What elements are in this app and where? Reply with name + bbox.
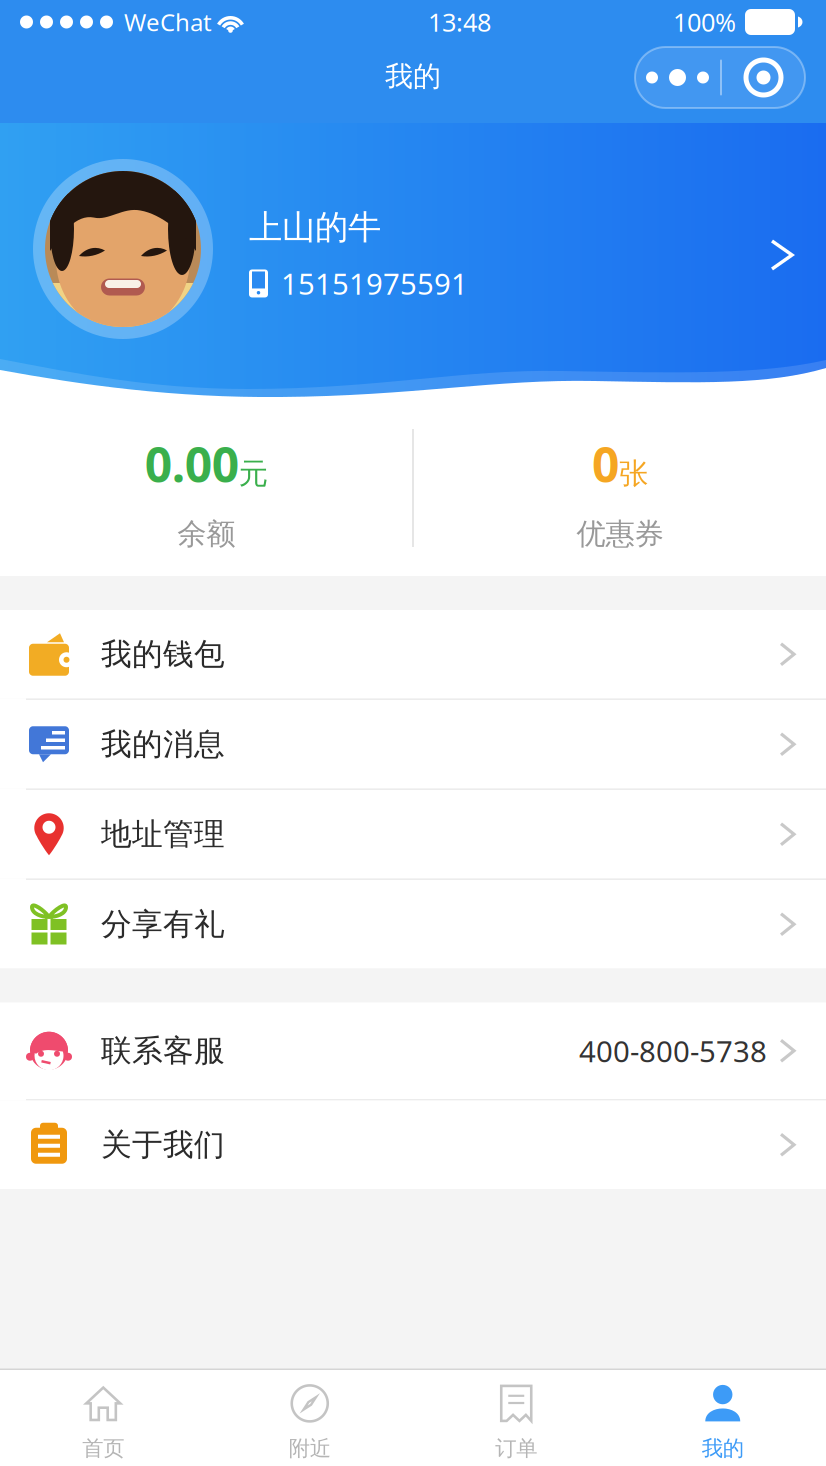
staticText: 15151975591 — [281, 264, 468, 303]
staticText: 张 — [619, 456, 648, 492]
staticText: 400-800-5738 — [579, 1031, 767, 1070]
staticText: 地址管理 — [101, 815, 225, 853]
button[interactable]: 上山的牛 — [0, 123, 826, 375]
button[interactable]: 0 — [414, 400, 826, 576]
button[interactable]: 订单 — [413, 1370, 619, 1466]
button[interactable]: 我的钱包 — [0, 610, 826, 698]
button[interactable]: 联系客服 — [0, 1002, 826, 1099]
staticText: 13:48 — [428, 5, 491, 39]
staticText: 我的 — [702, 1435, 744, 1462]
staticText: 余额 — [177, 516, 235, 552]
staticText: 我的钱包 — [101, 635, 225, 673]
staticText: 元 — [239, 456, 268, 492]
button[interactable]: 我的消息 — [0, 700, 826, 788]
button[interactable]: 关于我们 — [0, 1100, 826, 1189]
staticText: WeChat — [124, 6, 212, 38]
staticText: 我的消息 — [101, 725, 225, 763]
button[interactable]: 0.00 — [0, 400, 412, 576]
staticText: 联系客服 — [101, 1032, 225, 1070]
staticText: 分享有礼 — [101, 905, 225, 943]
staticText: 首页 — [82, 1435, 124, 1462]
staticText: 附近 — [289, 1435, 331, 1462]
staticText: 优惠券 — [576, 516, 663, 552]
button[interactable]: 地址管理 — [0, 790, 826, 878]
staticText: 关于我们 — [101, 1126, 225, 1164]
staticText: 0.00 — [145, 432, 239, 496]
button[interactable]: 分享有礼 — [0, 880, 826, 968]
staticText: 我的 — [385, 59, 441, 94]
staticText: 0 — [592, 432, 619, 496]
button[interactable]: 我的 — [619, 1370, 826, 1466]
button[interactable]: 更多 — [635, 47, 805, 108]
button[interactable]: 首页 — [0, 1370, 206, 1466]
staticText: 100% — [673, 5, 736, 39]
button[interactable]: 附近 — [206, 1370, 413, 1466]
staticText: 上山的牛 — [249, 207, 381, 248]
staticText: 订单 — [495, 1435, 537, 1462]
